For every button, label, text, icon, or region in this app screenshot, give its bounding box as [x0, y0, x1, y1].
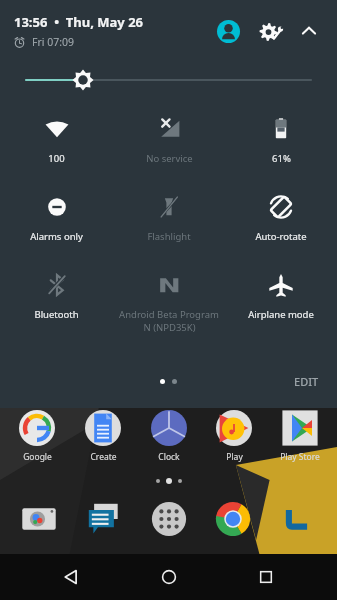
button[interactable]: All apps	[143, 494, 195, 544]
staticText: N (NPD35K)	[143, 321, 196, 334]
staticText: Airplane mode	[248, 308, 314, 321]
staticText: 61%	[272, 152, 291, 165]
button[interactable]: Recents	[240, 554, 292, 600]
button[interactable]: 61%	[225, 108, 337, 186]
button[interactable]: Messages	[78, 494, 130, 544]
button[interactable]: Airplane mode	[225, 264, 337, 342]
staticText: 100	[48, 152, 65, 165]
button[interactable]: Home	[143, 554, 195, 600]
button[interactable]: Flashlight	[113, 186, 225, 264]
staticText: 13:56 • Thu, May 26	[14, 13, 144, 31]
button[interactable]: Clock	[140, 408, 198, 463]
staticText: Auto-rotate	[255, 230, 307, 243]
staticText: Android Beta Program	[119, 308, 219, 321]
staticText: Flashlight	[147, 230, 191, 243]
button[interactable]: No service	[113, 108, 225, 186]
staticText: Play	[226, 451, 243, 463]
button[interactable]: 100	[0, 108, 113, 186]
button[interactable]: Back	[45, 554, 97, 600]
button[interactable]: Google	[8, 408, 66, 463]
button[interactable]: Auto-rotate	[225, 186, 337, 264]
button[interactable]: User account	[211, 14, 245, 48]
staticText: Google	[23, 451, 52, 463]
button[interactable]: Camera	[13, 494, 65, 544]
button[interactable]: Chrome	[207, 494, 259, 544]
button[interactable]: Create	[74, 408, 132, 463]
button[interactable]: Play Store	[271, 408, 329, 463]
staticText: Create	[90, 451, 117, 463]
staticText: Fri 07:09	[32, 35, 75, 49]
button[interactable]: Bluetooth	[0, 264, 113, 342]
button[interactable]: Brightness	[0, 62, 337, 98]
button[interactable]: Phone	[272, 494, 324, 544]
button[interactable]: Collapse	[293, 15, 325, 47]
button[interactable]: Android Beta Program	[113, 264, 225, 342]
staticText: No service	[146, 152, 193, 165]
staticText: Play Store	[280, 451, 320, 463]
button[interactable]: Alarms only	[0, 186, 113, 264]
staticText: Clock	[158, 451, 180, 463]
button[interactable]: Play	[205, 408, 263, 463]
staticText: Bluetooth	[34, 308, 79, 321]
staticText: Alarms only	[30, 230, 83, 243]
button[interactable]: Settings	[253, 14, 287, 48]
button[interactable]: EDIT	[290, 372, 323, 391]
staticText: EDIT	[294, 374, 319, 389]
